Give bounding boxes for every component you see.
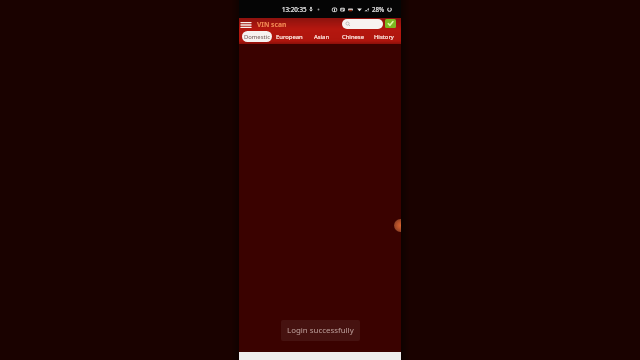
button[interactable]: Search bbox=[342, 19, 383, 29]
button[interactable]: Asian bbox=[313, 31, 331, 42]
staticText: Asian bbox=[314, 33, 330, 41]
button[interactable]: Confirm bbox=[385, 19, 396, 28]
button[interactable]: Chinese bbox=[341, 31, 365, 42]
staticText: Login successfully bbox=[287, 325, 354, 336]
button[interactable]: Domestic bbox=[242, 31, 272, 42]
staticText: Chinese bbox=[342, 33, 364, 41]
staticText: 13:20:35 bbox=[282, 5, 307, 13]
staticText: European bbox=[276, 33, 303, 41]
button[interactable]: Menu bbox=[240, 19, 252, 31]
staticText: 28% bbox=[372, 5, 385, 13]
button[interactable]: European bbox=[275, 31, 304, 42]
staticText: History bbox=[374, 33, 394, 41]
button[interactable]: History bbox=[373, 31, 395, 42]
staticText: VIN scan bbox=[257, 20, 287, 29]
staticText: Domestic bbox=[244, 33, 270, 41]
button[interactable]: Scan bbox=[394, 219, 401, 232]
